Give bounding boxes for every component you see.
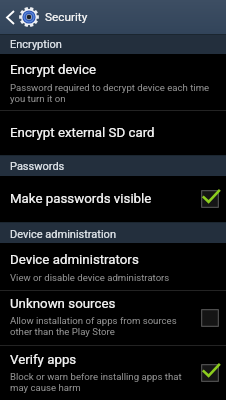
staticText: Passwords bbox=[10, 160, 65, 173]
staticText: View or disable device administrators bbox=[10, 272, 170, 283]
button[interactable]: Device administrators bbox=[0, 243, 226, 290]
button[interactable]: Verify apps bbox=[0, 346, 226, 400]
staticText: Password required to decrypt device each… bbox=[10, 82, 220, 104]
staticText: Verify apps bbox=[10, 352, 77, 368]
button[interactable]: Encrypt device bbox=[0, 54, 226, 110]
button[interactable]: Navigate up bbox=[0, 0, 40, 34]
button[interactable]: Unknown sources bbox=[0, 291, 226, 345]
staticText: Encryption bbox=[10, 38, 62, 51]
staticText: Device administration bbox=[10, 228, 116, 241]
staticText: Unknown sources bbox=[10, 296, 116, 312]
button[interactable]: Encrypt external SD card bbox=[0, 111, 226, 155]
staticText: Encrypt device bbox=[10, 62, 97, 78]
button[interactable]: Make passwords visible bbox=[0, 176, 226, 222]
staticText: Make passwords visible bbox=[10, 191, 152, 207]
staticText: Security bbox=[45, 10, 88, 24]
staticText: Device administrators bbox=[10, 252, 139, 268]
staticText: Block or warn before installing apps tha… bbox=[10, 371, 200, 393]
staticText: Encrypt external SD card bbox=[10, 125, 155, 141]
staticText: Allow installation of apps from sources … bbox=[10, 315, 200, 337]
